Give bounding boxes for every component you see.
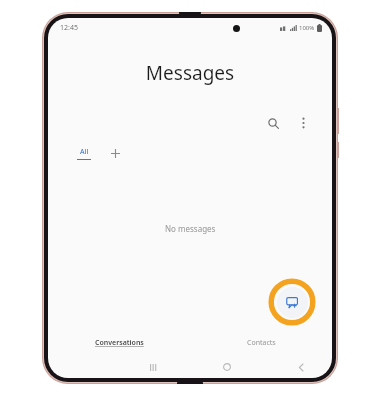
staticText: Contacts: [247, 338, 276, 348]
staticText: 100%: [299, 24, 315, 32]
staticText: Messages: [48, 60, 332, 86]
button[interactable]: Contacts: [190, 330, 332, 356]
staticText: All: [80, 147, 89, 157]
button[interactable]: Search: [260, 110, 286, 136]
staticText: 12:45: [60, 23, 78, 33]
staticText: Conversations: [95, 338, 144, 348]
button[interactable]: Recents: [144, 358, 162, 376]
button[interactable]: Conversations: [48, 330, 190, 356]
button[interactable]: All: [74, 145, 94, 162]
button[interactable]: New conversation: [277, 287, 308, 318]
button[interactable]: Add category: [106, 144, 124, 162]
button[interactable]: Home: [218, 358, 236, 376]
button[interactable]: Back: [292, 358, 310, 376]
button[interactable]: More options: [290, 110, 316, 136]
staticText: No messages: [165, 223, 216, 234]
